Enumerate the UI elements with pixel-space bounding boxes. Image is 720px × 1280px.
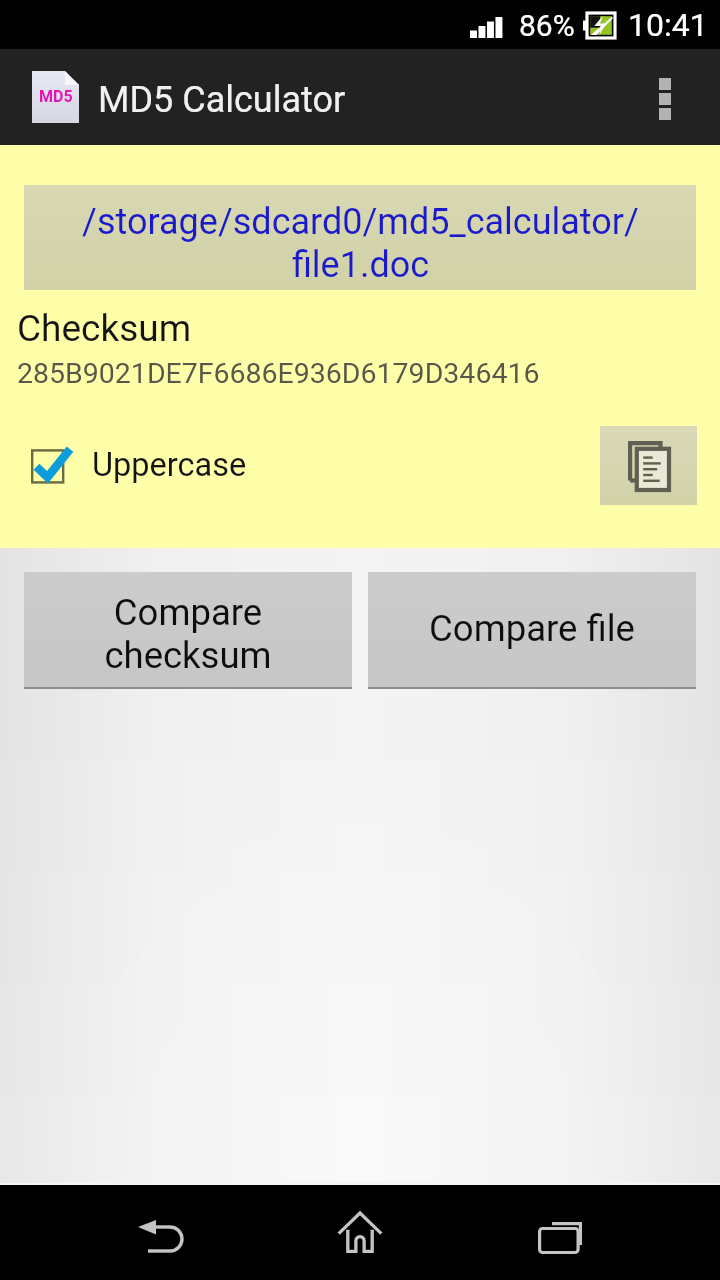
button[interactable]: Copy checksum xyxy=(600,426,697,505)
button[interactable]: Recent apps xyxy=(460,1183,660,1280)
staticText: 285B9021DE7F6686E936D6179D346416 xyxy=(17,357,540,390)
button[interactable]: /storage/sdcard0/md5_calculator/ file1.d… xyxy=(24,185,696,290)
staticText: MD5 Calculator xyxy=(98,79,346,121)
staticText: MD5 xyxy=(39,87,73,106)
button[interactable]: Uppercase xyxy=(31,446,247,484)
staticText: /storage/sdcard0/md5_calculator/ file1.d… xyxy=(82,201,639,286)
staticText: Uppercase xyxy=(92,446,247,484)
button[interactable]: Compare checksum xyxy=(24,572,352,687)
staticText: Compare file xyxy=(429,607,635,650)
staticText: Checksum xyxy=(17,307,192,350)
staticText: 86% xyxy=(519,8,575,43)
button[interactable]: Home xyxy=(260,1183,460,1280)
button[interactable]: Compare file xyxy=(368,572,696,687)
staticText: 10:41 xyxy=(628,6,708,44)
button[interactable]: Back xyxy=(60,1183,260,1280)
button[interactable]: More options xyxy=(609,49,720,145)
staticText: Compare checksum xyxy=(104,591,272,677)
